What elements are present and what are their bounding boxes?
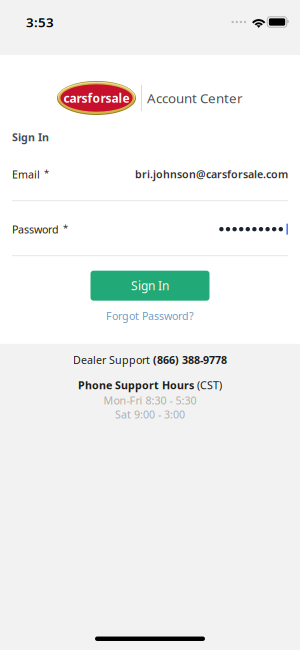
staticText: Forgot Password? — [106, 309, 194, 323]
staticText: Dealer Support (866) 388-9778 — [73, 353, 227, 367]
staticText: Email * — [12, 167, 49, 182]
staticText: Password * — [12, 222, 68, 237]
button[interactable]: Forgot Password? — [12, 305, 288, 327]
button[interactable]: Sign In — [90, 271, 209, 301]
staticText: Sign In — [12, 130, 49, 144]
staticText: Sign In — [131, 278, 169, 294]
staticText: bri.johnson@carsforsale.com — [135, 167, 288, 181]
staticText: Account Center — [147, 89, 243, 107]
staticText: Sat 9:00 - 3:00 — [115, 407, 185, 421]
staticText: Phone Support Hours (CST) — [78, 378, 222, 392]
staticText: 3:53 — [26, 13, 54, 31]
staticText: Mon-Fri 8:30 - 5:30 — [103, 393, 196, 407]
staticText: carsforsale — [63, 90, 129, 106]
